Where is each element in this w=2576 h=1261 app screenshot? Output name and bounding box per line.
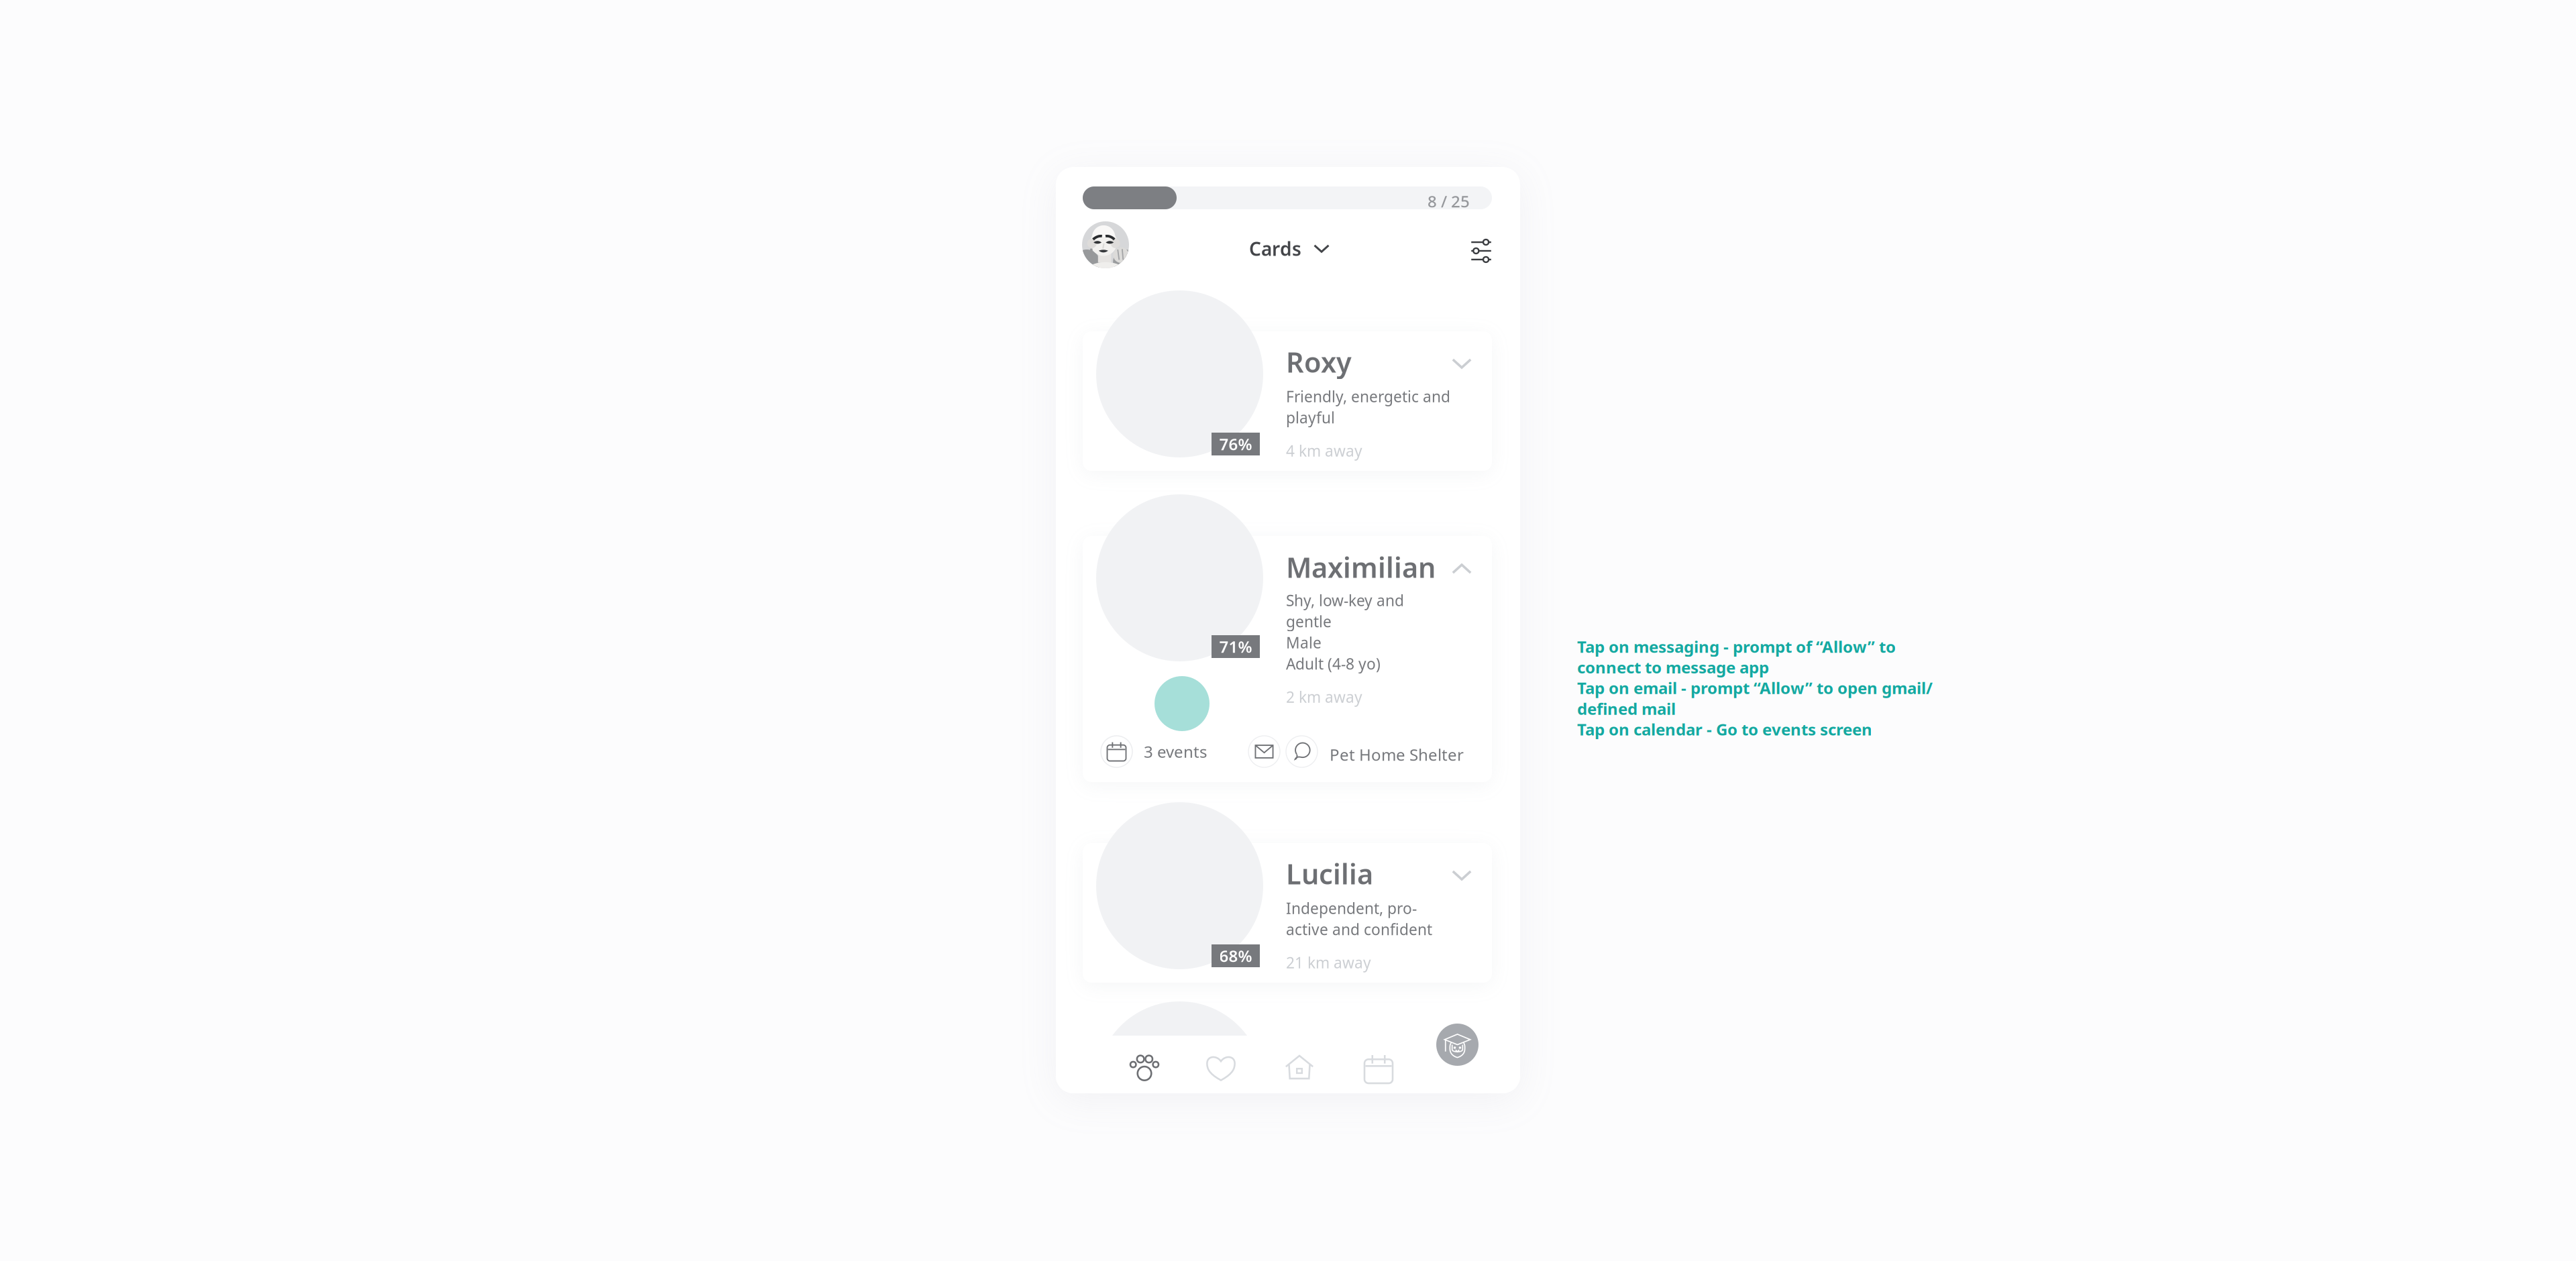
button[interactable]: Email shelter bbox=[1248, 736, 1280, 767]
button[interactable]: Cards bbox=[1249, 236, 1330, 261]
button[interactable]: Discover bbox=[1126, 1048, 1163, 1086]
staticText: gentle bbox=[1286, 611, 1332, 632]
staticText: defined mail bbox=[1577, 698, 1676, 719]
staticText: Maximilian bbox=[1286, 549, 1436, 585]
button[interactable]: Shelters bbox=[1281, 1048, 1318, 1086]
staticText: Tap on email - prompt “Allow” to open gm… bbox=[1577, 677, 1933, 699]
button[interactable]: Favourites bbox=[1202, 1049, 1240, 1087]
button[interactable]: Profile bbox=[1082, 221, 1129, 268]
button[interactable]: Lucilia bbox=[1083, 843, 1492, 983]
button[interactable]: Message shelter bbox=[1286, 736, 1318, 767]
staticText: 3 events bbox=[1144, 741, 1207, 762]
staticText: Lucilia bbox=[1286, 855, 1373, 892]
staticText: Independent, pro- bbox=[1286, 898, 1417, 918]
button[interactable]: Events bbox=[1360, 1050, 1397, 1088]
staticText: active and confident bbox=[1286, 919, 1432, 939]
staticText: Tap on messaging - prompt of “Allow” to bbox=[1577, 636, 1896, 657]
button[interactable]: Filters bbox=[1470, 240, 1492, 262]
staticText: Tap on calendar - Go to events screen bbox=[1577, 719, 1872, 740]
staticText: Male bbox=[1286, 633, 1322, 653]
staticText: 2 km away bbox=[1286, 687, 1362, 707]
staticText: Shy, low-key and bbox=[1286, 590, 1404, 610]
staticText: Friendly, energetic and bbox=[1286, 386, 1450, 407]
staticText: 8 / 25 bbox=[1428, 190, 1470, 212]
staticText: 68% bbox=[1219, 945, 1252, 967]
staticText: 21 km away bbox=[1286, 952, 1371, 973]
staticText: 4 km away bbox=[1286, 441, 1362, 461]
button[interactable]: Expand Lucilia bbox=[1446, 863, 1477, 887]
staticText: Pet Home Shelter bbox=[1330, 744, 1464, 765]
button[interactable]: Expand Roxy bbox=[1446, 351, 1477, 376]
button[interactable]: 3 events bbox=[1101, 736, 1207, 767]
staticText: 71% bbox=[1219, 636, 1252, 657]
staticText: 76% bbox=[1219, 433, 1252, 455]
button[interactable]: Roxy bbox=[1083, 331, 1492, 471]
staticText: Adult (4-8 yo) bbox=[1286, 654, 1381, 674]
button[interactable]: Learn bbox=[1436, 1024, 1479, 1066]
staticText: playful bbox=[1286, 407, 1335, 428]
button[interactable]: Maximilian bbox=[1083, 536, 1492, 782]
button[interactable]: Collapse Maximilian bbox=[1446, 557, 1477, 581]
staticText: Cards bbox=[1249, 236, 1301, 261]
staticText: Roxy bbox=[1286, 343, 1352, 380]
staticText: connect to message app bbox=[1577, 657, 1769, 678]
